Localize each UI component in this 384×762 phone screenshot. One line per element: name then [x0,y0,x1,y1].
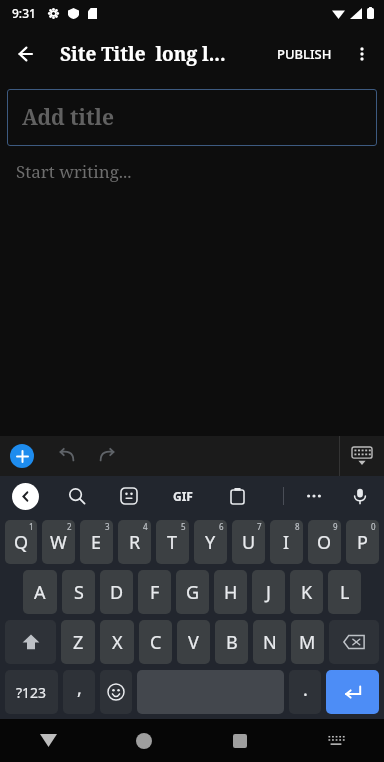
button[interactable]: PUBLISH [269,37,340,71]
button[interactable]: H [214,570,247,614]
staticText: G [186,580,200,605]
button[interactable]: T [156,520,189,564]
staticText: W [50,530,67,555]
button[interactable]: K [290,570,323,614]
staticText: , [77,676,82,701]
button[interactable]: M [291,620,324,664]
staticText: 0 [371,521,376,532]
button[interactable]: Hide keyboard [340,436,384,476]
staticText: R [129,530,141,555]
staticText: J [266,580,271,605]
button[interactable]: Enter [326,670,379,714]
staticText: 3 [105,521,110,532]
staticText: V [188,630,199,655]
staticText: P [357,530,368,555]
button[interactable]: Search [61,480,93,512]
button[interactable]: F [138,570,171,614]
button[interactable]: Stickers [113,480,145,512]
button[interactable]: Undo [50,439,84,473]
staticText: 7 [257,521,262,532]
button[interactable]: J [252,570,285,614]
button[interactable]: Back [0,30,48,78]
button[interactable]: Q [5,520,37,564]
staticText: M [299,630,316,655]
staticText: Z [73,630,84,655]
button[interactable]: G [176,570,209,614]
staticText: C [150,630,162,655]
staticText: A [34,580,46,605]
staticText: PUBLISH [277,45,332,63]
button[interactable]: C [139,620,172,664]
staticText: 1 [29,521,34,532]
staticText: B [226,630,238,655]
staticText: Y [205,530,216,555]
button[interactable]: Home [96,719,192,762]
staticText: D [110,580,124,605]
button[interactable]: N [253,620,286,664]
staticText: O [317,530,332,555]
staticText: 9:31 [12,5,36,21]
button[interactable]: Backspace [329,620,379,664]
button[interactable]: V [177,620,210,664]
button[interactable]: L [328,570,361,614]
staticText: 9 [333,521,338,532]
button[interactable]: I [270,520,303,564]
staticText: K [301,580,313,605]
staticText: T [167,530,178,555]
button[interactable]: Add block [10,444,34,468]
button[interactable]: A [23,570,57,614]
staticText: Start writing... [16,160,132,183]
button[interactable]: Clipboard [221,480,253,512]
button[interactable]: S [62,570,95,614]
button[interactable]: Back [0,719,96,762]
button[interactable]: More options [340,32,384,76]
staticText: 2 [67,521,72,532]
button[interactable]: Voice input [344,480,376,512]
staticText: . [303,677,308,702]
button[interactable]: Emoji [100,670,132,714]
staticText: Q [14,530,29,555]
staticText: X [112,630,123,655]
staticText: S [74,580,84,605]
button[interactable]: Expand [12,483,39,510]
staticText: 8 [295,521,300,532]
button[interactable]: More [298,480,330,512]
button[interactable]: D [100,570,133,614]
staticText: U [242,530,256,555]
button[interactable]: O [308,520,341,564]
staticText: 4 [143,521,148,532]
staticText: L [340,580,350,605]
button[interactable]: E [80,520,113,564]
staticText: 6 [219,521,224,532]
button[interactable]: Y [194,520,227,564]
staticText: Add title [22,103,114,132]
staticText: F [150,580,160,605]
staticText: I [283,530,290,555]
staticText: ?123 [16,683,47,702]
staticText: GIF [173,488,193,504]
button[interactable]: Z [61,620,95,664]
button[interactable]: X [100,620,134,664]
button[interactable]: GIF [165,478,201,514]
button[interactable]: Switch keyboard [288,719,384,762]
button[interactable]: P [346,520,379,564]
staticText: 5 [181,521,186,532]
button[interactable]: Shift [5,620,56,664]
button[interactable]: Redo [90,439,124,473]
staticText: Site Title long l... [60,41,269,67]
button[interactable]: . [289,670,321,714]
staticText: E [91,530,102,555]
button[interactable]: W [42,520,75,564]
staticText: N [263,630,277,655]
button[interactable]: Recents [192,719,288,762]
button[interactable]: Add title [7,89,377,146]
staticText: H [224,580,238,605]
button[interactable]: B [215,620,248,664]
button[interactable]: U [232,520,265,564]
button[interactable]: , [63,670,95,714]
button[interactable]: R [118,520,151,564]
button[interactable]: ?123 [5,670,58,714]
